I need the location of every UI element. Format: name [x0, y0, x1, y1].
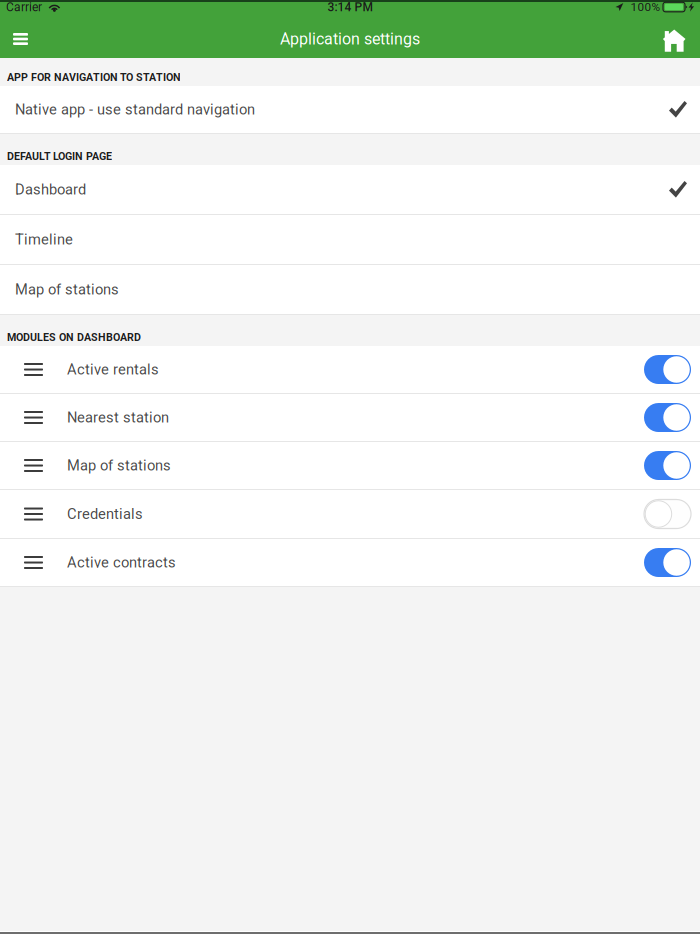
staticText: Dashboard: [15, 181, 86, 198]
staticText: Carrier: [6, 0, 42, 14]
button[interactable]: Menu: [0, 20, 41, 58]
button[interactable]: Active contracts: [0, 539, 700, 587]
staticText: Application settings: [280, 30, 420, 48]
staticText: Credentials: [67, 505, 143, 523]
staticText: DEFAULT LOGIN PAGE: [7, 150, 112, 162]
button[interactable]: Active rentals: [0, 346, 700, 394]
button[interactable]: Native app - use standard navigation: [0, 86, 700, 134]
staticText: Active rentals: [67, 361, 159, 378]
button[interactable]: Nearest station: [0, 394, 700, 442]
button[interactable]: Credentials: [0, 490, 700, 539]
staticText: Active contracts: [67, 554, 176, 571]
button[interactable]: Timeline: [0, 215, 700, 265]
button[interactable]: Home: [649, 20, 700, 58]
staticText: Native app - use standard navigation: [15, 101, 255, 118]
staticText: 100%: [630, 0, 660, 14]
button[interactable]: Map of stations: [0, 265, 700, 315]
staticText: APP FOR NAVIGATION TO STATION: [7, 71, 181, 83]
staticText: Map of stations: [67, 457, 171, 474]
staticText: Map of stations: [15, 281, 119, 298]
staticText: MODULES ON DASHBOARD: [7, 331, 141, 343]
staticText: Nearest station: [67, 409, 169, 426]
staticText: Timeline: [15, 231, 73, 248]
staticText: 3:14 PM: [327, 0, 372, 14]
button[interactable]: Map of stations: [0, 442, 700, 490]
button[interactable]: Dashboard: [0, 165, 700, 215]
